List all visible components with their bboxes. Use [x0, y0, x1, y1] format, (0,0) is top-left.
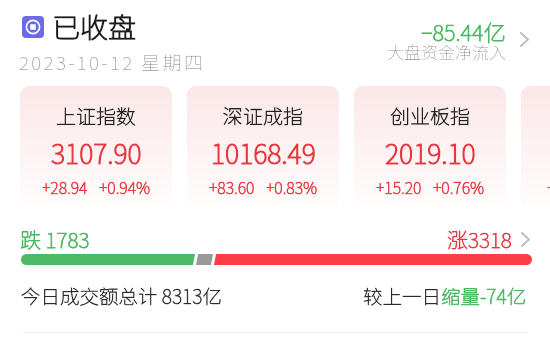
button[interactable]: 涨3318 — [447, 224, 530, 254]
staticText: 涨3318 — [447, 224, 512, 254]
staticText: 深证成指 — [223, 101, 303, 130]
staticText: +15.20 — [376, 175, 422, 198]
staticText: +0.94% — [99, 175, 151, 198]
staticText: −85.44亿 — [421, 15, 506, 47]
staticText: 今日成交额总计 8313亿 — [21, 281, 222, 309]
staticText: +4.13 — [547, 175, 550, 198]
other: 查看大盘资金净流入 — [520, 32, 529, 47]
staticText: 2023-10-12 星期四 — [19, 48, 206, 76]
other: 市场状态 — [22, 16, 44, 38]
button[interactable]: 市场状态 — [22, 6, 137, 47]
staticText: 今日成交额总计 8313亿 — [21, 281, 222, 309]
staticText: 较上一日缩量-74亿 — [363, 281, 527, 309]
staticText: +28.94 — [42, 175, 88, 198]
staticText: 创业板指 — [390, 101, 470, 130]
staticText: 2019.10 — [385, 133, 476, 172]
staticText: 3107.90 — [51, 133, 142, 172]
staticText: 2019.10 — [385, 133, 476, 172]
button[interactable]: 创业板指 — [354, 86, 506, 210]
staticText: +0.83% — [266, 175, 318, 198]
staticText: +83.60 — [209, 175, 255, 198]
staticText: +15.20 — [376, 175, 422, 198]
staticText: +83.60 — [209, 175, 255, 198]
button[interactable]: 深证成指 — [187, 86, 339, 210]
staticText: 较上一日缩量-74亿 — [363, 281, 527, 309]
staticText: 已收盘 — [52, 6, 137, 47]
staticText: 涨3318 — [447, 224, 512, 254]
staticText: 上证指数 — [56, 101, 136, 130]
staticText: 10168.49 — [211, 133, 316, 172]
staticText: +0.76% — [433, 175, 485, 198]
button[interactable]: 北证50 — [521, 86, 550, 210]
staticText: 10168.49 — [211, 133, 316, 172]
staticText: +28.94 — [42, 175, 88, 198]
staticText: 已收盘 — [52, 6, 137, 47]
staticText: +4.13 — [547, 175, 550, 198]
button[interactable]: 上证指数 — [20, 86, 172, 210]
staticText: 上证指数 — [56, 101, 136, 130]
other: 涨跌家数详情 — [521, 232, 530, 247]
staticText: 创业板指 — [390, 101, 470, 130]
staticText: +0.94% — [99, 175, 151, 198]
button[interactable]: −85.44亿 — [387, 15, 529, 72]
staticText: 跌 1783 — [20, 224, 90, 254]
staticText: 大盘资金净流入 — [387, 39, 506, 64]
staticText: 深证成指 — [223, 101, 303, 130]
staticText: +0.83% — [266, 175, 318, 198]
staticText: +0.76% — [433, 175, 485, 198]
staticText: 跌 1783 — [20, 224, 90, 254]
staticText: −85.44亿 — [421, 15, 506, 47]
staticText: 3107.90 — [51, 133, 142, 172]
